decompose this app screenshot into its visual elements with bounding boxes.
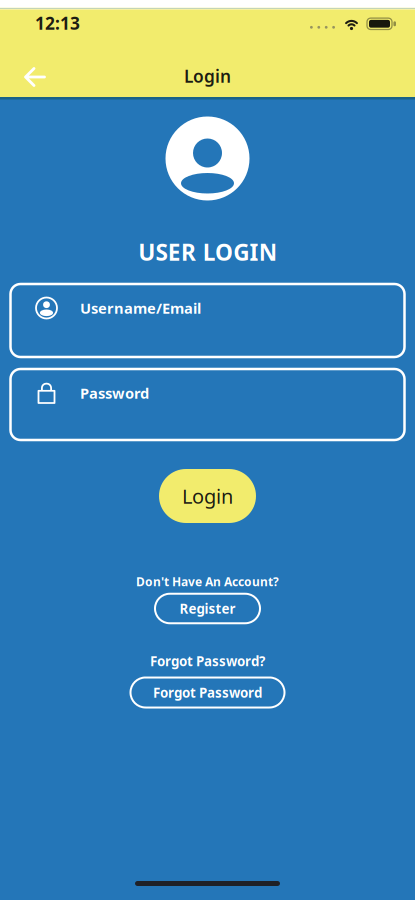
button[interactable]: Forgot Password <box>130 677 284 707</box>
staticText: Forgot Password <box>153 684 262 701</box>
staticText: Register <box>179 600 235 617</box>
button[interactable]: Password <box>10 369 404 440</box>
staticText: Username/Email <box>80 298 201 318</box>
button[interactable]: Back <box>17 60 51 94</box>
staticText: 12:13 <box>35 11 80 34</box>
staticText: Don't Have An Account? <box>136 573 279 589</box>
button[interactable]: Register <box>155 594 260 623</box>
staticText: USER LOGIN <box>138 237 277 267</box>
staticText: Login <box>184 64 231 87</box>
staticText: Forgot Password? <box>150 652 265 670</box>
button[interactable]: Username/Email <box>10 284 404 357</box>
staticText: Login <box>182 483 233 509</box>
button[interactable]: Login <box>159 469 256 523</box>
staticText: Password <box>80 383 149 403</box>
